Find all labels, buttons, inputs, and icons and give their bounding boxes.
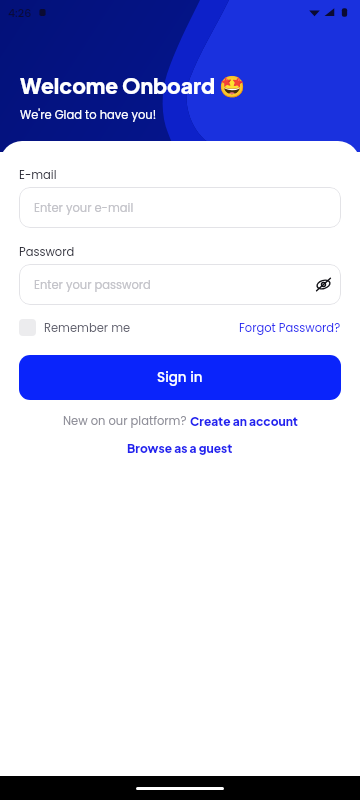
- staticText: Browse as a guest: [127, 441, 233, 456]
- staticText: Enter your password: [34, 277, 151, 293]
- staticText: Remember me: [44, 320, 131, 336]
- button[interactable]: Sign in: [19, 355, 341, 400]
- staticText: 4:26: [8, 5, 32, 20]
- staticText: Welcome Onboard 🤩: [20, 72, 246, 99]
- button[interactable]: Enter your e-mail: [19, 187, 341, 228]
- button[interactable]: Enter your password: [19, 264, 341, 305]
- button[interactable]: Forgot Password?: [239, 320, 341, 336]
- staticText: Forgot Password?: [239, 320, 341, 336]
- staticText: Sign in: [157, 368, 203, 387]
- button[interactable]: Show password: [316, 277, 331, 292]
- staticText: Enter your e-mail: [34, 200, 134, 216]
- staticText: New on our platform?: [63, 413, 190, 429]
- button[interactable]: Browse as a guest: [127, 441, 233, 456]
- staticText: We're Glad to have you!: [20, 107, 157, 123]
- staticText: E-mail: [19, 167, 57, 183]
- button[interactable]: Create an account: [190, 414, 298, 429]
- staticText: Password: [19, 244, 75, 260]
- button[interactable]: Remember me: [19, 319, 131, 336]
- staticText: Create an account: [190, 414, 298, 429]
